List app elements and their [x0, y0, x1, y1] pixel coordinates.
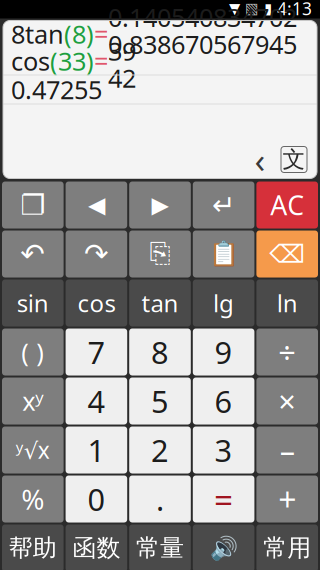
staticText: % [21, 480, 44, 518]
staticText: = [94, 44, 108, 78]
staticText: 4 [87, 381, 105, 421]
staticText: – [280, 430, 295, 470]
staticText: 8tan [11, 17, 64, 51]
staticText: 8 [151, 332, 169, 372]
staticText: 0.47255 [11, 73, 102, 106]
staticText: . [156, 479, 164, 519]
staticText: ◀ [88, 192, 105, 218]
staticText: 0.14054083470239 [108, 0, 297, 68]
button[interactable]: 0 [66, 475, 127, 522]
staticText: = [94, 17, 108, 51]
staticText: 3 [215, 430, 233, 470]
staticText: ↷ [84, 237, 109, 271]
staticText: ʸ√x [16, 435, 50, 465]
button[interactable]: Root [2, 426, 64, 473]
button[interactable]: 3 [193, 426, 254, 473]
staticText: xʸ [22, 384, 43, 418]
button[interactable]: lg [193, 279, 254, 326]
staticText: ‹ [254, 136, 265, 182]
button[interactable]: Functions [66, 524, 127, 570]
staticText: 📋 [209, 240, 239, 268]
button[interactable]: Copy [129, 230, 191, 277]
staticText: ❐ [20, 189, 45, 221]
staticText: ÷ [278, 332, 296, 372]
staticText: ▮ [264, 0, 272, 17]
button[interactable]: 2 [129, 426, 191, 473]
staticText: 6 [215, 381, 233, 421]
button[interactable]: Minus [256, 426, 318, 473]
button[interactable]: Decimal point [129, 475, 191, 522]
button[interactable]: 4 [66, 377, 127, 424]
staticText: 帮助 [9, 533, 57, 563]
staticText: cos [77, 287, 115, 319]
staticText: cos [11, 44, 50, 78]
button[interactable]: Left [66, 181, 127, 228]
staticText: 5 [151, 381, 169, 421]
button[interactable]: Parentheses [2, 328, 64, 375]
button[interactable]: Divide [256, 328, 318, 375]
button[interactable]: Delete [256, 230, 318, 277]
staticText: 4:13 [277, 0, 312, 20]
button[interactable]: Help [2, 524, 64, 570]
staticText: ▧ [245, 0, 259, 17]
button[interactable]: cos [66, 279, 127, 326]
button[interactable]: Percent [2, 475, 64, 522]
staticText: + [278, 478, 296, 520]
staticText: × [278, 381, 296, 421]
staticText: sin [17, 287, 49, 319]
button[interactable]: 9 [193, 328, 254, 375]
staticText: AC [270, 187, 304, 223]
button[interactable]: Sound [193, 524, 254, 570]
staticText: tan [141, 287, 178, 319]
staticText: 常量 [136, 533, 184, 563]
staticText: 0.83867056794542 [108, 27, 297, 95]
staticText: ▼ [229, 0, 240, 17]
button[interactable]: Windows [2, 181, 64, 228]
button[interactable]: All clear [256, 181, 318, 228]
button[interactable]: 1 [66, 426, 127, 473]
button[interactable]: Paste [193, 230, 254, 277]
button[interactable]: Power [2, 377, 64, 424]
button[interactable]: Previous [249, 146, 271, 172]
button[interactable]: Frequently used [256, 524, 318, 570]
button[interactable]: 8 [129, 328, 191, 375]
button[interactable]: Enter [193, 181, 254, 228]
staticText: 9 [215, 332, 233, 372]
button[interactable]: Plus [256, 475, 318, 522]
staticText: = [214, 477, 233, 521]
staticText: ln [277, 287, 298, 319]
staticText: 2 [151, 430, 169, 470]
button[interactable]: 5 [129, 377, 191, 424]
button[interactable]: sin [2, 279, 64, 326]
staticText: 7 [87, 332, 105, 372]
staticText: lg [213, 287, 234, 319]
staticText: (8) [64, 17, 94, 51]
staticText: 常用 [263, 533, 311, 563]
button[interactable]: Language [281, 146, 307, 172]
staticText: ↶ [20, 237, 45, 271]
staticText: ( ) [21, 335, 44, 369]
staticText: 0 [87, 479, 105, 519]
button[interactable]: 6 [193, 377, 254, 424]
button[interactable]: Undo [2, 230, 64, 277]
button[interactable]: ln [256, 279, 318, 326]
button[interactable]: Redo [66, 230, 127, 277]
button[interactable]: Constants [129, 524, 191, 570]
staticText: 函数 [72, 533, 120, 563]
button[interactable]: Multiply [256, 377, 318, 424]
staticText: (33) [50, 44, 94, 78]
button[interactable]: Equals [193, 475, 254, 522]
button[interactable]: 7 [66, 328, 127, 375]
staticText: ↵ [212, 189, 235, 221]
button[interactable]: tan [129, 279, 191, 326]
staticText: ⌫ [269, 240, 305, 268]
staticText: ⎘ [149, 241, 170, 267]
staticText: 🔊 [210, 535, 238, 561]
staticText: 1 [87, 430, 105, 470]
staticText: 文 [282, 146, 305, 173]
staticText: ▶ [151, 192, 168, 218]
button[interactable]: Right [129, 181, 191, 228]
